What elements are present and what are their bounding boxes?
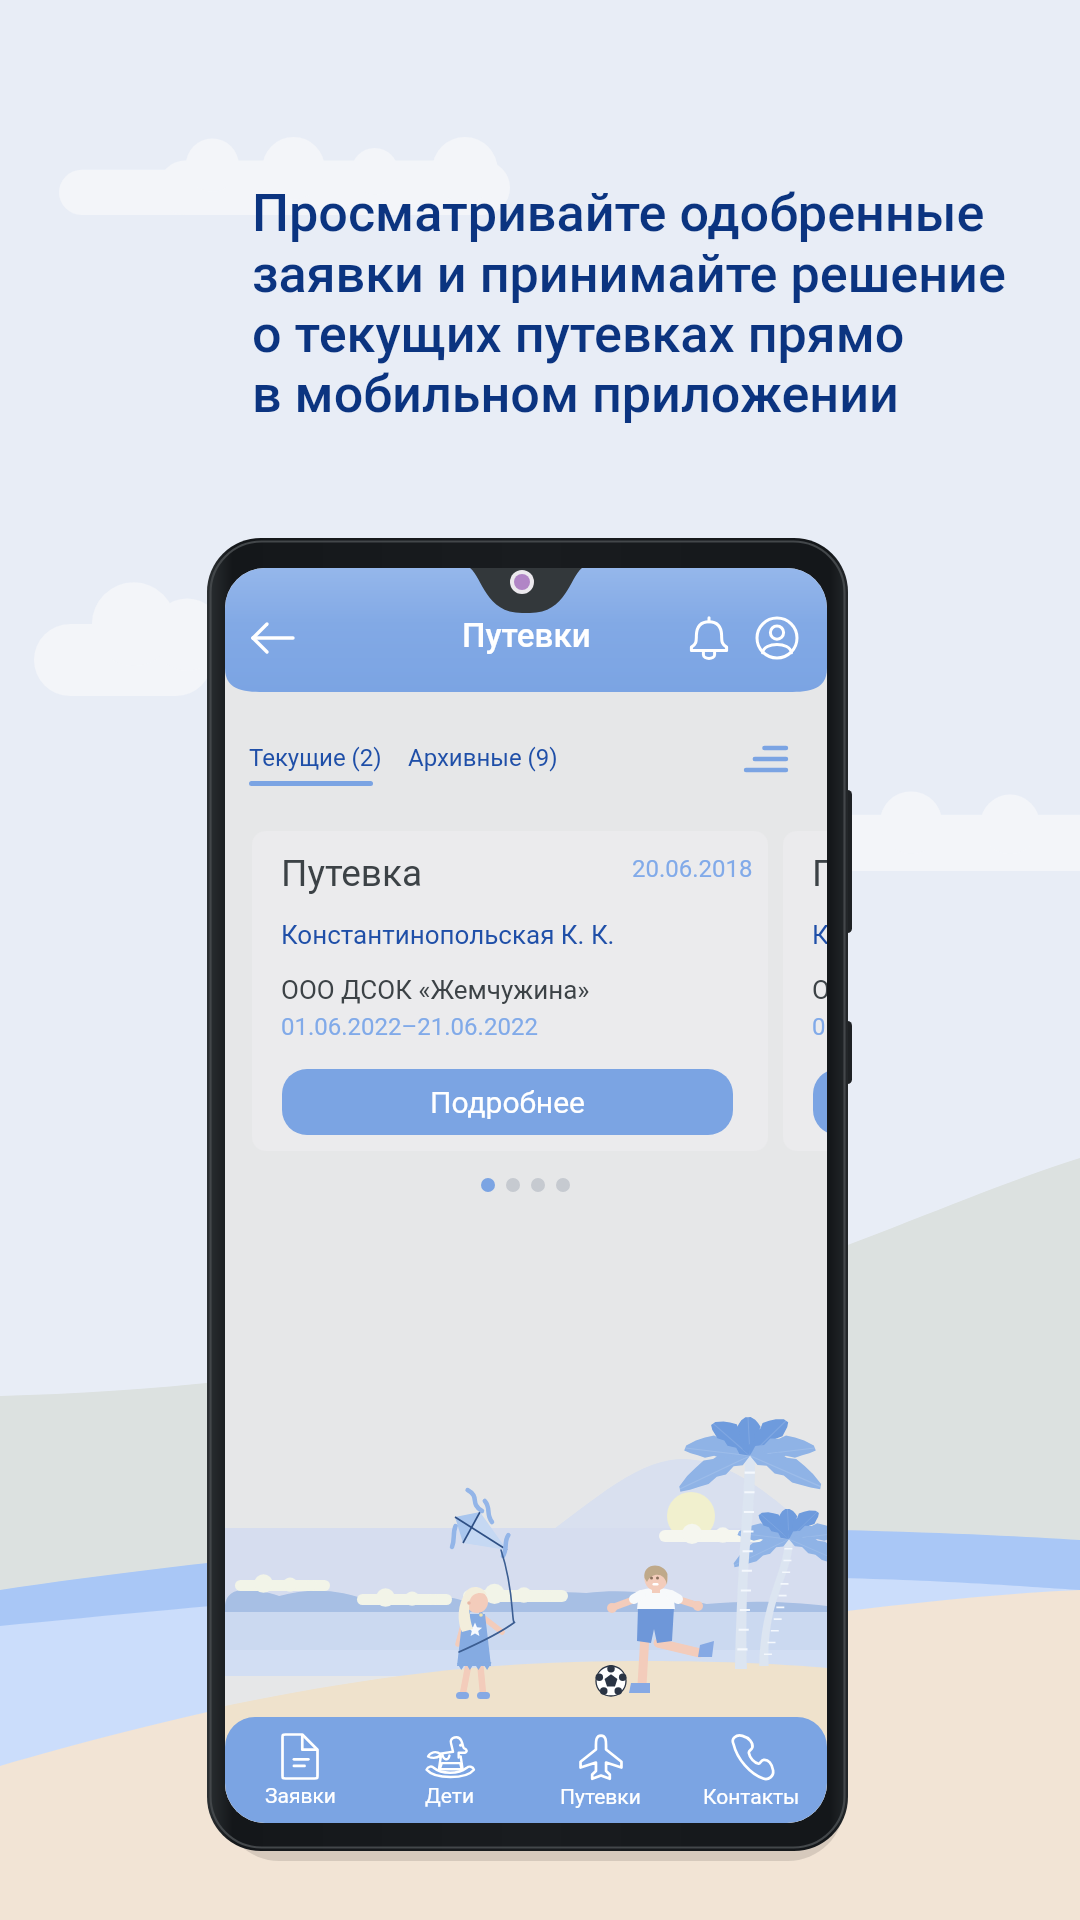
staticText: Заявки — [265, 1784, 336, 1809]
button[interactable]: 20.06.2018 — [783, 831, 827, 1151]
staticText: Дети — [425, 1784, 475, 1809]
button[interactable]: Дети — [375, 1721, 525, 1819]
button[interactable]: Текущие (2) — [249, 744, 382, 772]
staticText: Контакты — [703, 1785, 800, 1810]
staticText: Путевки — [462, 616, 591, 655]
button[interactable]: Заявки — [225, 1721, 375, 1819]
button[interactable]: Архивные (9) — [408, 744, 558, 772]
staticText: 01.06.2022–21.06.2022 — [812, 1013, 827, 1041]
button[interactable]: Back — [245, 610, 301, 666]
staticText: Путевки — [560, 1785, 641, 1810]
button[interactable]: 20.06.2018 — [252, 831, 768, 1151]
staticText: 01.06.2022–21.06.2022 — [281, 1013, 538, 1041]
staticText: Константинопольская К. К. — [281, 920, 615, 950]
button[interactable]: Контакты — [676, 1721, 827, 1820]
staticText: Архивные (9) — [408, 744, 558, 772]
button[interactable]: Notifications — [681, 610, 737, 666]
staticText: Путевка — [812, 852, 827, 895]
button[interactable]: Подробнее — [282, 1069, 733, 1135]
staticText: Путевка — [281, 852, 423, 895]
staticText: ООО ДСОК «Жемчужина» — [812, 975, 827, 1005]
button[interactable]: Sort — [737, 730, 795, 788]
staticText: ООО ДСОК «Жемчужина» — [281, 975, 590, 1005]
staticText: Текущие (2) — [249, 744, 382, 772]
staticText: Константинопольская К. К. — [812, 920, 827, 950]
button[interactable]: Подробнее — [813, 1069, 827, 1135]
staticText: Просматривайте одобренные заявки и прини… — [252, 183, 1006, 424]
button[interactable]: Путевки — [525, 1721, 676, 1820]
staticText: 20.06.2018 — [632, 855, 753, 883]
button[interactable]: Profile — [749, 610, 805, 666]
staticText: Подробнее — [430, 1085, 585, 1120]
